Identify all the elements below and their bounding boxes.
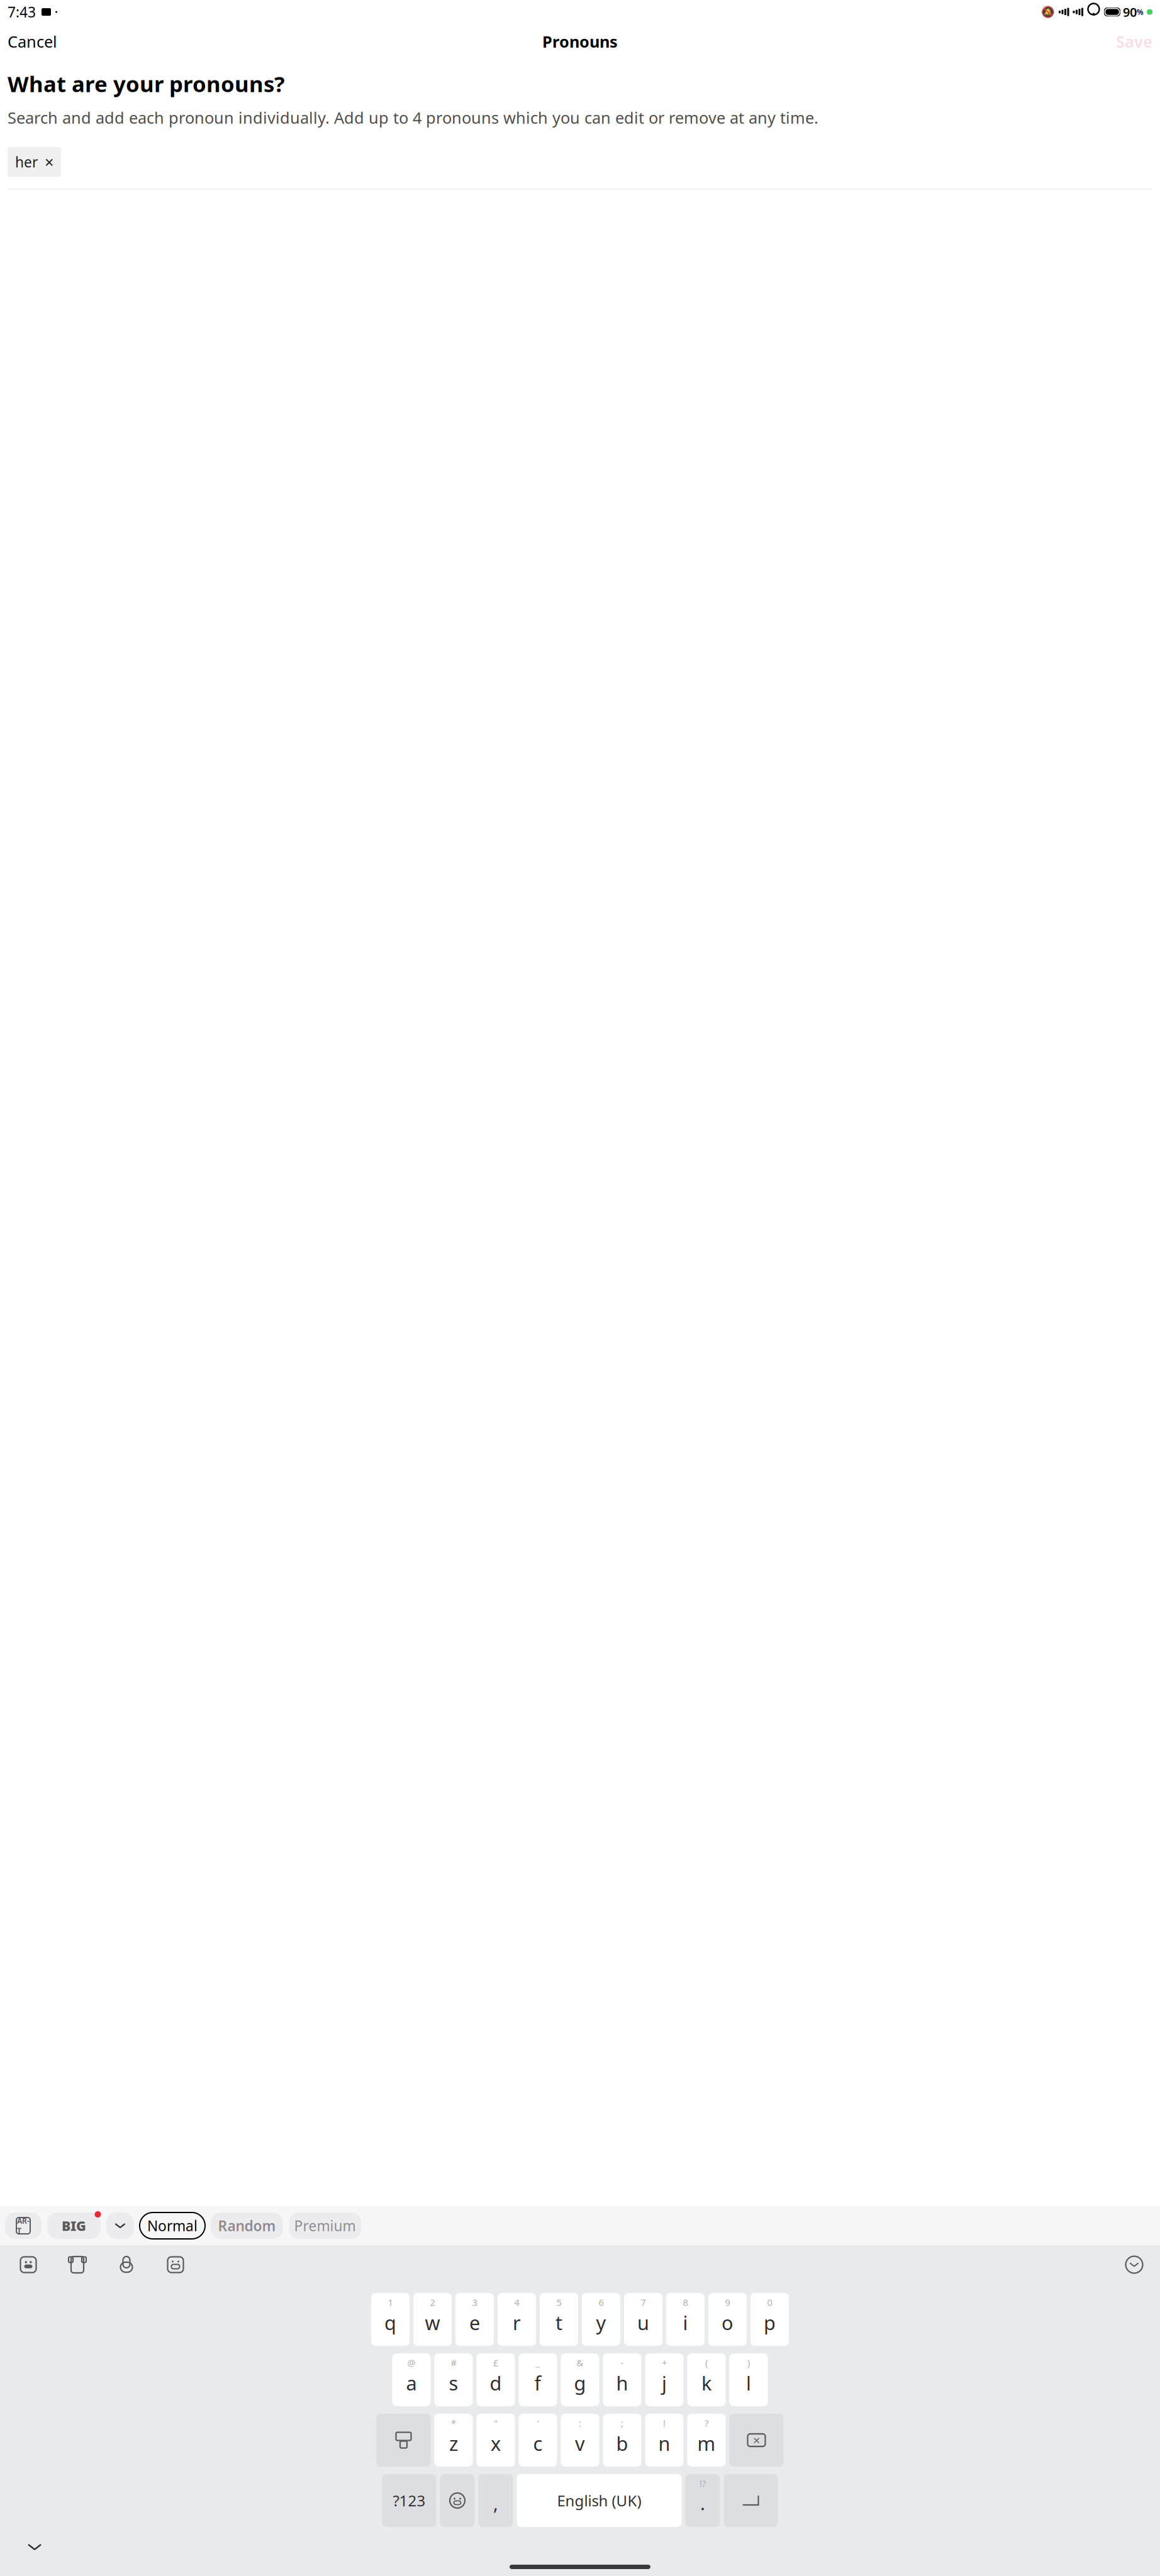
staticText: ?: [705, 2417, 708, 2429]
staticText: +: [662, 2357, 667, 2369]
staticText: c: [533, 2430, 543, 2456]
staticText: m: [697, 2430, 716, 2456]
staticText: #: [451, 2357, 456, 2369]
staticText: her: [15, 152, 38, 171]
staticText: g: [574, 2370, 586, 2396]
button[interactable]: +: [645, 2353, 683, 2406]
staticText: q: [384, 2310, 396, 2335]
button[interactable]: Shift: [376, 2414, 431, 2467]
staticText: Cancel: [8, 31, 57, 52]
staticText: 90: [1123, 4, 1137, 20]
staticText: 8: [683, 2296, 688, 2308]
button[interactable]: Emoji: [151, 2248, 200, 2282]
staticText: ×: [45, 151, 53, 173]
button[interactable]: 1: [371, 2293, 410, 2346]
staticText: !: [663, 2417, 666, 2429]
button[interactable]: Collapse: [1112, 2248, 1156, 2282]
button[interactable]: 8: [666, 2293, 705, 2346]
staticText: w: [425, 2310, 440, 2335]
button[interactable]: Comma: [478, 2474, 513, 2527]
button[interactable]: Stickers: [4, 2248, 53, 2282]
staticText: 3: [472, 2296, 477, 2308]
button[interactable]: Themes: [53, 2248, 102, 2282]
button[interactable]: 5: [540, 2293, 578, 2346]
button[interactable]: Random: [211, 2212, 283, 2239]
button[interactable]: ": [477, 2414, 515, 2467]
staticText: Random: [218, 2216, 276, 2235]
button[interactable]: !: [645, 2414, 683, 2467]
button[interactable]: 6: [582, 2293, 620, 2346]
button[interactable]: _: [519, 2353, 557, 2406]
staticText: k: [701, 2370, 711, 2396]
staticText: 0: [767, 2296, 772, 2308]
button[interactable]: 2: [413, 2293, 452, 2346]
staticText: a: [406, 2370, 417, 2396]
button[interactable]: Numbers: [382, 2474, 436, 2527]
staticText: .: [700, 2491, 705, 2515]
button[interactable]: ': [519, 2414, 557, 2467]
button[interactable]: £: [477, 2353, 515, 2406]
staticText: ): [747, 2357, 750, 2369]
staticText: r: [513, 2310, 521, 2335]
staticText: y: [596, 2310, 606, 2335]
button[interactable]: 0: [750, 2293, 789, 2346]
staticText: 9: [725, 2296, 730, 2308]
button[interactable]: Full stop: [685, 2474, 720, 2527]
staticText: ?123: [393, 2491, 426, 2511]
staticText: _: [536, 2357, 540, 2369]
button[interactable]: Premium: [289, 2212, 361, 2239]
staticText: £: [493, 2357, 498, 2369]
button[interactable]: Cancel: [0, 26, 65, 57]
staticText: Pronouns: [542, 31, 618, 52]
button[interactable]: BIG: [47, 2212, 101, 2239]
staticText: ;: [621, 2417, 623, 2429]
button[interactable]: Hide keyboard: [6, 2533, 63, 2561]
button[interactable]: Return: [724, 2474, 778, 2527]
button[interactable]: @: [392, 2353, 431, 2406]
staticText: 7:43: [8, 2, 36, 21]
button[interactable]: Voice input: [102, 2248, 151, 2282]
button[interactable]: Emoji: [440, 2474, 475, 2527]
button[interactable]: ART: [5, 2212, 42, 2239]
staticText: Normal: [147, 2216, 198, 2235]
staticText: Save: [1116, 31, 1152, 52]
button[interactable]: #: [434, 2353, 473, 2406]
button[interactable]: *: [434, 2414, 473, 2467]
staticText: 1: [388, 2296, 393, 2308]
button[interactable]: ?: [687, 2414, 726, 2467]
staticText: BIG: [62, 2217, 86, 2235]
button[interactable]: [106, 2212, 134, 2239]
button[interactable]: :: [561, 2414, 599, 2467]
button[interactable]: 4: [498, 2293, 536, 2346]
staticText: ': [537, 2417, 539, 2429]
button[interactable]: Normal: [140, 2212, 205, 2239]
button[interactable]: 3: [455, 2293, 494, 2346]
staticText: b: [616, 2430, 628, 2456]
staticText: n: [658, 2430, 670, 2456]
button[interactable]: (: [687, 2353, 726, 2406]
staticText: ": [494, 2417, 498, 2429]
button[interactable]: -: [603, 2353, 641, 2406]
staticText: -: [621, 2357, 624, 2369]
staticText: Search and add each pronoun individually…: [8, 107, 818, 128]
staticText: :: [579, 2417, 581, 2429]
button[interactable]: her: [8, 147, 61, 177]
staticText: f: [534, 2370, 541, 2396]
staticText: ,: [493, 2491, 498, 2515]
staticText: *: [451, 2417, 456, 2429]
button[interactable]: English (UK): [517, 2474, 682, 2527]
button[interactable]: ;: [603, 2414, 641, 2467]
button[interactable]: Backspace: [729, 2414, 784, 2467]
button[interactable]: Save: [1108, 26, 1160, 57]
button[interactable]: 9: [708, 2293, 747, 2346]
button[interactable]: 7: [624, 2293, 662, 2346]
button[interactable]: &: [561, 2353, 599, 2406]
staticText: Premium: [294, 2216, 356, 2235]
staticText: i: [683, 2310, 688, 2335]
staticText: 🔕: [1041, 6, 1055, 18]
staticText: &: [577, 2357, 583, 2369]
staticText: s: [449, 2370, 458, 2396]
staticText: 7: [641, 2296, 646, 2308]
button[interactable]: ): [729, 2353, 768, 2406]
staticText: d: [490, 2370, 502, 2396]
